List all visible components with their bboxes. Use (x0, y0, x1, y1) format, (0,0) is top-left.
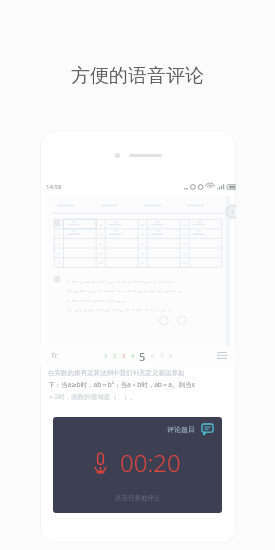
button[interactable]: 评论题目 (167, 424, 213, 435)
button[interactable]: 7 (157, 349, 166, 363)
button[interactable]: 5 (137, 349, 148, 363)
staticText: 14:58 (46, 183, 62, 191)
staticText: 8 (169, 352, 173, 360)
staticText: 2 (113, 352, 117, 360)
staticText: 1 (104, 352, 108, 360)
staticText: 3 (122, 352, 126, 360)
button[interactable]: 6 (148, 349, 157, 363)
staticText: 7 (160, 352, 164, 360)
staticText: 在实数的原有运算法则中我们补充定义新运算如 (48, 369, 185, 377)
button[interactable]: Recording microphone (94, 452, 107, 474)
staticText: 点击任意处停止 (115, 494, 161, 502)
button[interactable]: Comment (202, 424, 213, 435)
staticText: 6 (151, 352, 155, 360)
button[interactable]: 3 (119, 349, 128, 363)
staticText: 5 (139, 349, 146, 363)
staticText: 00:20 (120, 446, 181, 479)
staticText: 下：当a≥b时，ab＝b²；当a＜b时，ab＝a。则当x (48, 380, 195, 389)
staticText: ＝2时，函数的值域是（ ）。 (48, 392, 137, 401)
staticText: Tr (51, 351, 58, 361)
staticText: 评论题目 (167, 425, 195, 434)
button[interactable]: Text size (48, 349, 61, 362)
button[interactable]: Menu (215, 349, 228, 362)
button[interactable]: 2 (110, 349, 119, 363)
button[interactable]: 8 (166, 349, 175, 363)
staticText: 方便的语音评论 (71, 64, 204, 88)
staticText: 4 (131, 352, 135, 360)
button[interactable]: 1 (101, 349, 110, 363)
button[interactable]: 评论题目 (53, 417, 222, 513)
button[interactable]: 4 (128, 349, 137, 363)
button[interactable]: Info (225, 204, 236, 219)
